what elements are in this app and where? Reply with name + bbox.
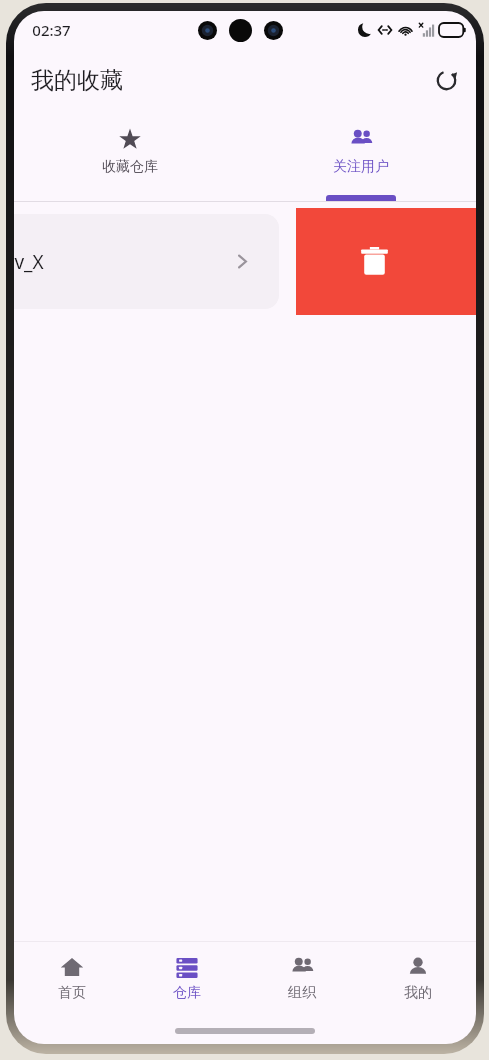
staticText: 组织	[288, 984, 316, 1002]
staticText: 收藏仓库	[102, 158, 158, 176]
button[interactable]: v_X	[14, 214, 279, 309]
staticText: 关注用户	[333, 158, 389, 176]
button[interactable]: 关注用户	[245, 111, 476, 202]
staticText: 我的	[404, 984, 432, 1002]
staticText: 02:37	[32, 20, 71, 40]
button[interactable]: 组织	[244, 942, 360, 1018]
button[interactable]: 仓库	[129, 942, 244, 1018]
staticText: 仓库	[173, 984, 201, 1002]
button[interactable]: Refresh	[426, 60, 466, 100]
staticText: 首页	[58, 984, 86, 1002]
button[interactable]: 收藏仓库	[14, 111, 245, 202]
button[interactable]: Delete	[296, 208, 476, 315]
button[interactable]: 首页	[14, 942, 129, 1018]
button[interactable]: 我的	[360, 942, 476, 1018]
staticText: 我的收藏	[31, 66, 123, 95]
staticText: v_X	[14, 249, 44, 275]
